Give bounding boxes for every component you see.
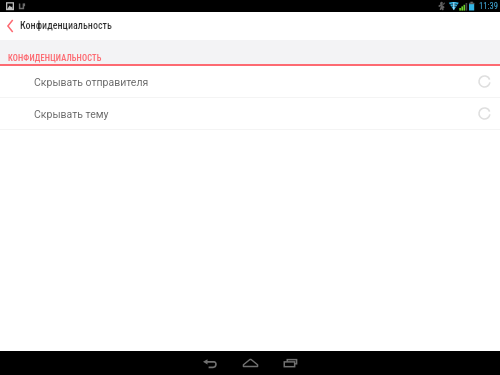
staticText: 11:39 bbox=[479, 1, 498, 11]
button[interactable]: Скрывать отправителя bbox=[0, 66, 500, 97]
staticText: Конфиденциальность bbox=[20, 20, 112, 32]
staticText: КОНФИДЕНЦИАЛЬНОСТЬ bbox=[8, 53, 102, 63]
button[interactable]: Back bbox=[190, 351, 230, 375]
staticText: Скрывать отправителя bbox=[34, 76, 149, 88]
button[interactable]: Home bbox=[230, 351, 270, 375]
staticText: Скрывать тему bbox=[34, 108, 109, 120]
button[interactable]: Back bbox=[0, 12, 20, 40]
button[interactable]: Recent apps bbox=[270, 351, 310, 375]
button[interactable]: Скрывать тему bbox=[0, 98, 500, 129]
